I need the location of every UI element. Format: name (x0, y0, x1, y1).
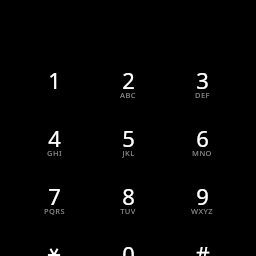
button[interactable]: 2 (91, 65, 165, 123)
staticText: TUV (120, 206, 136, 216)
staticText: 7 (48, 181, 61, 211)
button[interactable]: 8 (91, 181, 165, 239)
staticText: 1 (48, 65, 61, 95)
staticText: GHI (47, 148, 62, 158)
staticText: 2 (122, 65, 135, 95)
button[interactable]: 4 (17, 123, 91, 181)
button[interactable]: 1 (17, 65, 91, 123)
staticText: MNO (192, 148, 212, 158)
button[interactable]: 9 (165, 181, 239, 239)
button[interactable]: # (165, 239, 239, 256)
button[interactable]: 6 (165, 123, 239, 181)
button[interactable]: 3 (165, 65, 239, 123)
staticText: PQRS (44, 206, 65, 216)
staticText: # (195, 239, 210, 256)
staticText: 8 (122, 181, 135, 211)
staticText: 3 (196, 65, 209, 95)
staticText: ABC (120, 90, 136, 100)
staticText: 9 (196, 181, 209, 211)
staticText: 0 (122, 239, 135, 256)
staticText: 5 (122, 123, 135, 153)
staticText: 6 (196, 123, 209, 153)
button[interactable]: 0 (91, 239, 165, 256)
staticText: 4 (48, 123, 61, 153)
staticText: WXYZ (191, 206, 213, 216)
staticText: DEF (195, 90, 210, 100)
button[interactable]: Star key (17, 239, 91, 256)
staticText: JKL (122, 148, 135, 158)
button[interactable]: 7 (17, 181, 91, 239)
button[interactable]: 5 (91, 123, 165, 181)
